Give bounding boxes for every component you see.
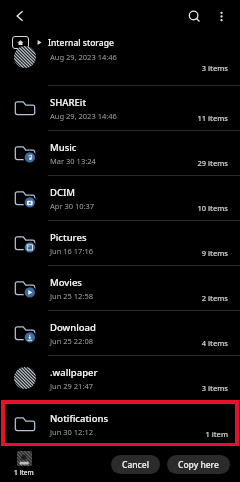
staticText: 2 items [201, 293, 228, 303]
staticText: 3 items [201, 383, 228, 393]
button[interactable]: SHAREit [0, 86, 240, 130]
staticText: Internal storage [48, 37, 114, 49]
button[interactable]: 1 item [14, 451, 34, 477]
staticText: 9 items [201, 248, 228, 258]
staticText: Jun 29 21:47 [50, 381, 93, 391]
staticText: Pictures [50, 231, 87, 244]
staticText: Download [50, 321, 96, 334]
staticText: Cancel [122, 459, 149, 471]
button[interactable]: Internal storage [48, 37, 114, 49]
staticText: Jun 16 17:16 [50, 246, 93, 256]
staticText: Movies [50, 276, 82, 289]
staticText: SHAREit [50, 96, 87, 109]
button[interactable]: Download [0, 311, 240, 355]
button[interactable]: .wallpaper [0, 356, 240, 400]
staticText: Notifications [50, 412, 109, 425]
button[interactable]: Music [0, 131, 240, 175]
staticText: 3 items [201, 63, 228, 73]
staticText: 29 items [197, 158, 228, 168]
button[interactable]: Back [6, 2, 34, 30]
staticText: 1 item [205, 429, 228, 439]
button[interactable]: More options [208, 3, 234, 29]
staticText: Aug 29, 2023 14:46 [50, 111, 117, 121]
staticText: 1 item [14, 468, 34, 477]
staticText: 11 items [197, 113, 228, 123]
button[interactable]: Aug 29, 2023 14:46 [0, 41, 240, 73]
staticText: Music [50, 141, 77, 154]
button[interactable]: Copy here [167, 455, 230, 474]
button[interactable]: Cancel [111, 455, 160, 474]
button[interactable]: Notifications [0, 402, 240, 446]
staticText: Jun 25 22:08 [50, 336, 93, 346]
button[interactable]: Home [12, 36, 29, 49]
staticText: Jun 25 12:58 [50, 291, 93, 301]
button[interactable]: Search [180, 2, 208, 30]
staticText: Copy here [178, 459, 219, 471]
staticText: Apr 30 10:37 [50, 201, 95, 211]
staticText: Aug 29, 2023 14:46 [50, 52, 117, 62]
staticText: Mar 30 13:24 [50, 156, 96, 166]
staticText: DCIM [50, 186, 76, 199]
staticText: 10 items [197, 203, 228, 213]
staticText: .wallpaper [50, 366, 98, 379]
button[interactable]: Movies [0, 266, 240, 310]
button[interactable]: Pictures [0, 221, 240, 265]
button[interactable]: DCIM [0, 176, 240, 220]
staticText: 4 items [201, 338, 228, 348]
staticText: Jun 30 12:12 [50, 427, 93, 437]
